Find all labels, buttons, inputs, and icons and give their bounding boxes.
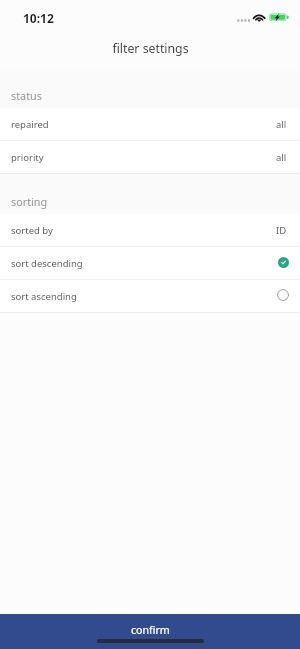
other: Signal, Wi-Fi and battery charging statu…	[0, 0, 300, 32]
staticText: all	[276, 118, 287, 131]
staticText: status	[11, 88, 42, 103]
button[interactable]: sorted by	[0, 214, 300, 246]
button[interactable]: confirm	[0, 614, 300, 649]
button[interactable]: repaired	[0, 108, 300, 140]
button[interactable]: priority	[0, 141, 300, 173]
staticText: 10:12	[23, 10, 54, 26]
staticText: sort descending	[11, 257, 83, 270]
other: Not selected	[277, 289, 289, 301]
staticText: repaired	[11, 118, 49, 131]
button[interactable]: sort ascending	[0, 280, 300, 312]
other: Selected	[278, 257, 289, 268]
staticText: ID	[276, 224, 287, 237]
staticText: sort ascending	[11, 290, 77, 303]
staticText: priority	[11, 151, 44, 164]
button[interactable]: sort descending	[0, 247, 300, 279]
staticText: sorting	[11, 194, 48, 209]
staticText: confirm	[131, 623, 170, 637]
staticText: filter settings	[112, 40, 189, 57]
staticText: all	[276, 151, 287, 164]
staticText: sorted by	[11, 224, 53, 237]
